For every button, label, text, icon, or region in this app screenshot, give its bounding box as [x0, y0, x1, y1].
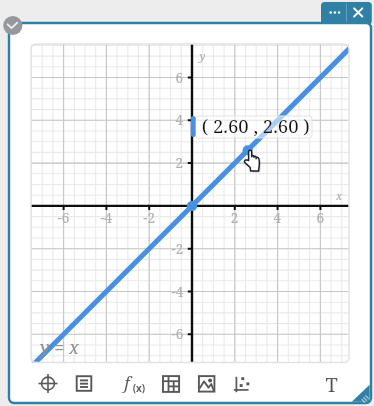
button[interactable]: Confirm [3, 15, 24, 36]
button[interactable]: More options [320, 2, 346, 25]
button[interactable]: Text tool [316, 368, 348, 400]
button[interactable]: Algebra view [68, 368, 100, 400]
button[interactable]: Point tool [32, 368, 64, 400]
button[interactable]: Image tool [190, 368, 222, 400]
button[interactable]: Functions [117, 368, 149, 400]
button[interactable]: Table view [155, 368, 187, 400]
button[interactable]: Statistics [226, 368, 258, 400]
button[interactable]: Close [346, 2, 372, 25]
button[interactable]: Resize [352, 384, 371, 403]
